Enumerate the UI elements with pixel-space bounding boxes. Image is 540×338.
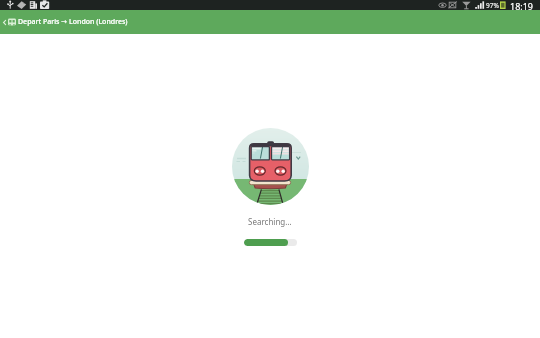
staticText: 97% — [486, 1, 499, 10]
button[interactable]: Back — [0, 18, 8, 26]
staticText: Searching… — [248, 216, 292, 227]
button[interactable]: Search progress — [244, 239, 297, 246]
staticText: 18:19 — [510, 0, 534, 10]
staticText: Depart Paris → London (Londres) — [18, 17, 128, 27]
